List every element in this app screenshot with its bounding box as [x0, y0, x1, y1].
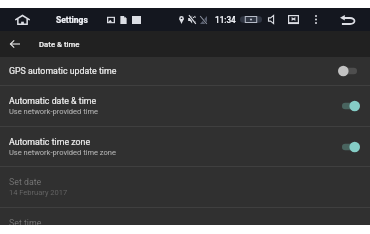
staticText: Set time [9, 218, 42, 228]
button[interactable]: More options [310, 8, 321, 31]
button[interactable]: Automatic date & time [0, 86, 370, 126]
staticText: GPS automatic update time [9, 66, 117, 76]
button[interactable]: Home [9, 8, 35, 31]
staticText: Date & time [39, 40, 80, 49]
button[interactable]: Off [335, 63, 357, 79]
button[interactable]: Signal [200, 8, 211, 31]
button[interactable]: Muted [188, 8, 200, 31]
staticText: 14 February 2017 [9, 188, 68, 197]
button[interactable]: Settings [56, 8, 88, 31]
staticText: Use network-provided time zone [9, 148, 116, 157]
staticText: Automatic date & time [9, 96, 97, 106]
staticText: Set date [9, 177, 42, 187]
button[interactable]: Back [336, 8, 360, 31]
button[interactable]: Recents [132, 8, 145, 31]
button[interactable]: Navigate up [5, 31, 25, 57]
staticText: Automatic time zone [9, 137, 91, 147]
button[interactable]: Battery [240, 8, 266, 31]
button[interactable]: On [335, 139, 357, 155]
button[interactable]: Screen off [288, 8, 303, 31]
button[interactable]: Volume [268, 8, 280, 31]
staticText: 11:34 [215, 15, 236, 25]
button[interactable]: On [335, 98, 357, 114]
button[interactable]: Set date [0, 167, 370, 207]
staticText: Settings [56, 15, 88, 25]
staticText: Use network-provided time [9, 107, 98, 116]
button[interactable]: Set time [0, 208, 370, 234]
button[interactable]: Automatic time zone [0, 127, 370, 166]
button[interactable]: GPS automatic update time [0, 57, 370, 85]
button[interactable]: Files [120, 8, 131, 31]
button[interactable]: Location [179, 8, 188, 31]
button[interactable]: Date & time [39, 31, 80, 57]
button[interactable]: Wallpaper [107, 8, 119, 31]
